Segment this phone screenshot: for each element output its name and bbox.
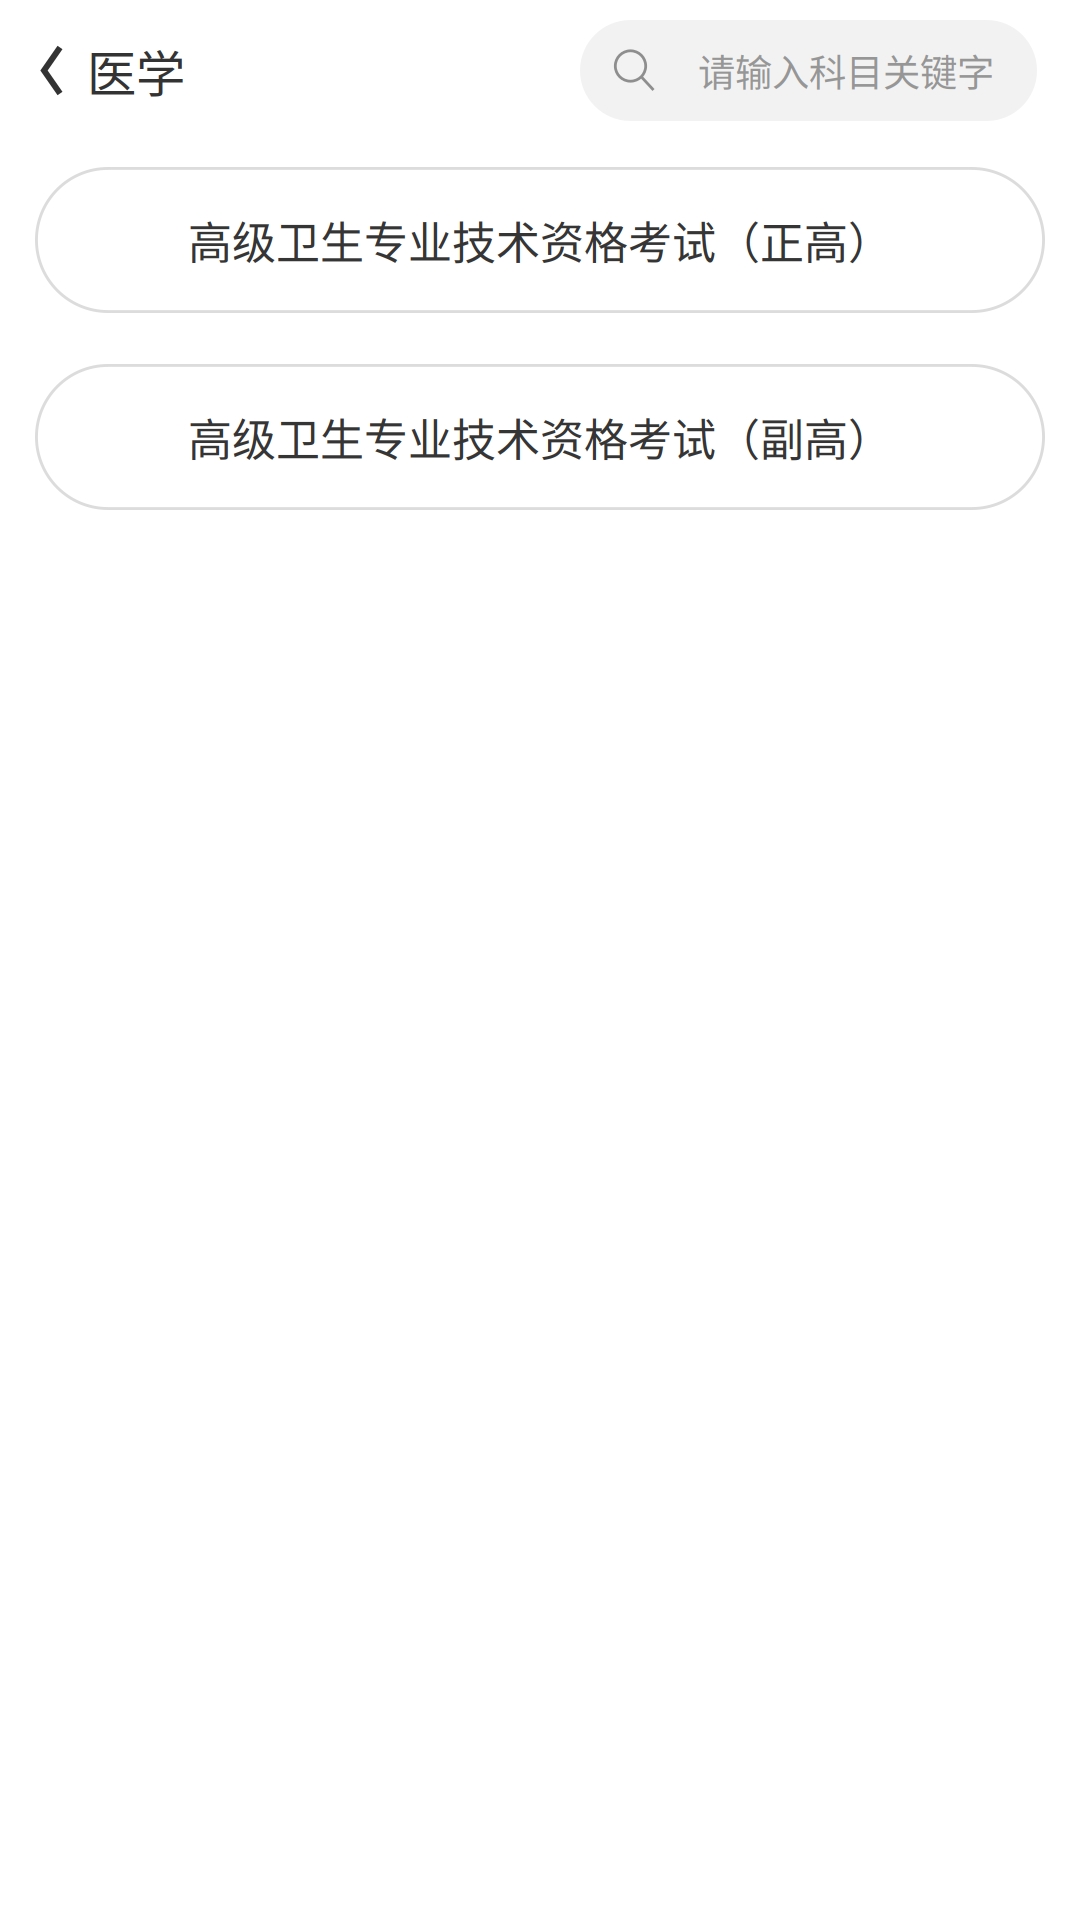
staticText: 医学	[87, 35, 185, 106]
staticText: 高级卫生专业技术资格考试（副高）	[188, 405, 892, 469]
button[interactable]: 请输入科目关键字	[580, 20, 1037, 121]
button[interactable]: 返回	[0, 0, 90, 141]
staticText: 请输入科目关键字	[698, 43, 994, 98]
button[interactable]: 高级卫生专业技术资格考试（副高）	[35, 364, 1045, 510]
button[interactable]: 高级卫生专业技术资格考试（正高）	[35, 167, 1045, 313]
staticText: 高级卫生专业技术资格考试（正高）	[188, 208, 892, 272]
